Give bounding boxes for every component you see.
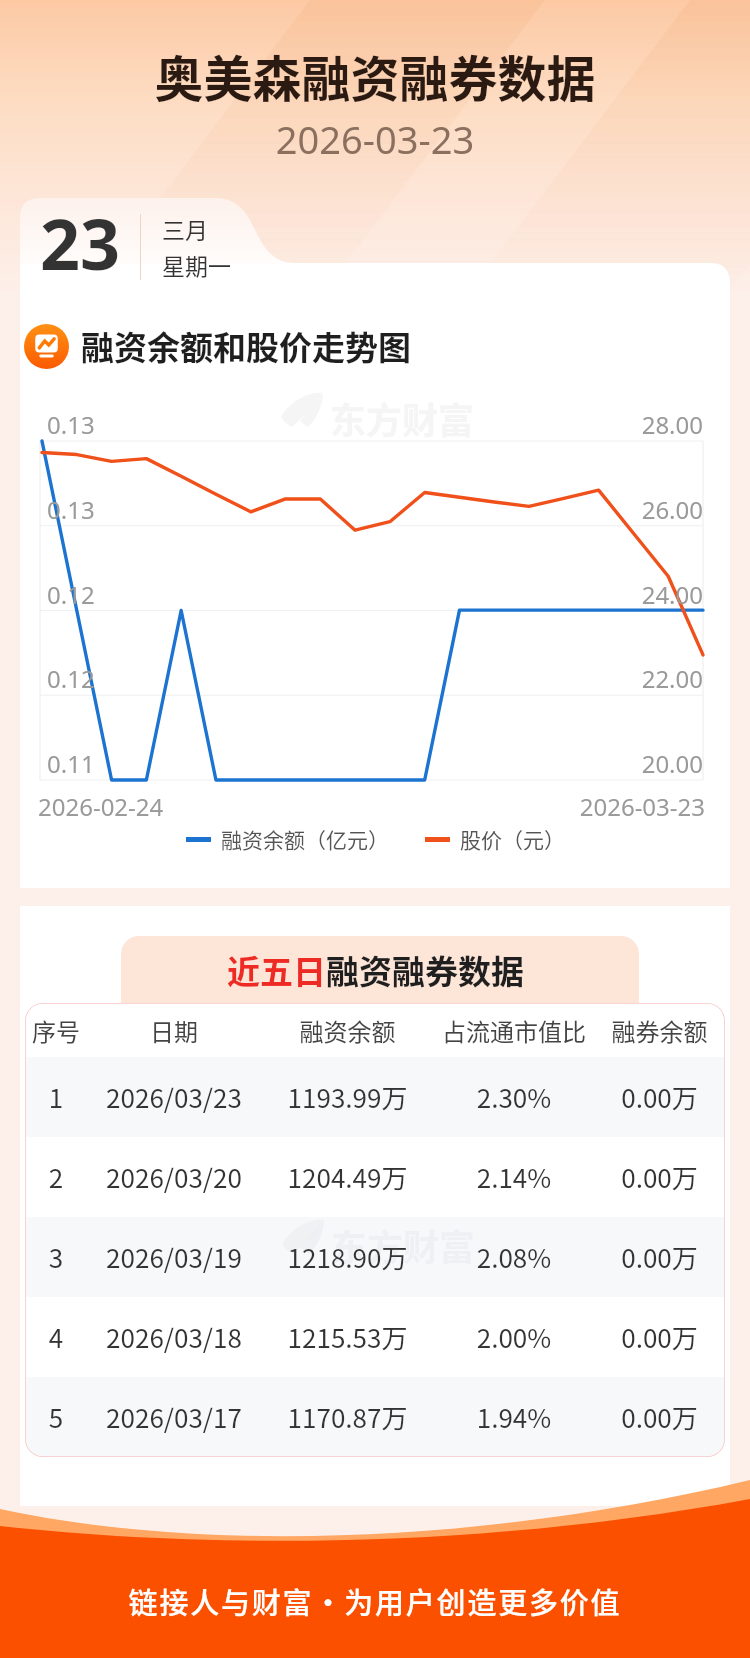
button[interactable]: 4 (25, 1297, 725, 1377)
staticText: 占流通市值比 (434, 1013, 594, 1048)
staticText: 0.00万 (594, 1158, 725, 1196)
staticText: 0.00万 (594, 1398, 725, 1436)
staticText: 5 (25, 1398, 87, 1436)
staticText: 26.00 (593, 493, 703, 526)
staticText: 2.00% (434, 1318, 594, 1356)
staticText: 融资融券数据 (326, 946, 524, 994)
staticText: 1.94% (434, 1398, 594, 1436)
staticText: 0.00万 (594, 1078, 725, 1116)
staticText: 2.14% (434, 1158, 594, 1196)
staticText: 1 (25, 1078, 87, 1116)
staticText: 2026/03/17 (87, 1398, 261, 1436)
staticText: 奥美森融资融券数据 (0, 40, 750, 111)
staticText: 1204.49万 (261, 1158, 434, 1196)
staticText: 三月 (162, 212, 208, 245)
staticText: 2026-02-24 (38, 790, 164, 823)
staticText: 2026/03/23 (87, 1078, 261, 1116)
staticText: 融券余额 (594, 1013, 725, 1048)
staticText: 1170.87万 (261, 1398, 434, 1436)
staticText: 1193.99万 (261, 1078, 434, 1116)
staticText: 2.08% (434, 1238, 594, 1276)
staticText: 1218.90万 (261, 1238, 434, 1276)
staticText: 2026-03-23 (0, 113, 750, 165)
staticText: 0.13 (47, 493, 95, 526)
staticText: 23 (40, 195, 121, 281)
staticText: 2 (25, 1158, 87, 1196)
staticText: 0.12 (47, 662, 95, 695)
staticText: 融资余额 (261, 1013, 434, 1048)
staticText: 22.00 (593, 662, 703, 695)
staticText: 股价（元） (460, 824, 565, 854)
staticText: 融资余额（亿元） (221, 824, 389, 854)
staticText: 4 (25, 1318, 87, 1356)
staticText: 星期一 (162, 248, 231, 281)
button[interactable]: 3 (25, 1217, 725, 1297)
staticText: 28.00 (593, 408, 703, 441)
staticText: 序号 (25, 1013, 87, 1048)
staticText: 20.00 (593, 747, 703, 780)
button[interactable]: 2 (25, 1137, 725, 1217)
staticText: 24.00 (593, 578, 703, 611)
staticText: 0.00万 (594, 1238, 725, 1276)
button[interactable]: 1 (25, 1057, 725, 1137)
staticText: 东方财富 (330, 392, 475, 444)
staticText: 日期 (87, 1013, 261, 1048)
staticText: 1215.53万 (261, 1318, 434, 1356)
staticText: 0.11 (47, 747, 95, 780)
staticText: 2.30% (434, 1078, 594, 1116)
staticText: 0.00万 (594, 1318, 725, 1356)
staticText: 0.12 (47, 578, 95, 611)
staticText: 近五日 (227, 946, 326, 994)
staticText: 3 (25, 1238, 87, 1276)
other: 融资余额和股价走势图 (24, 324, 69, 369)
staticText: 2026/03/20 (87, 1158, 261, 1196)
staticText: 2026-03-23 (533, 790, 705, 823)
button[interactable]: 5 (25, 1377, 725, 1457)
staticText: 0.13 (47, 408, 95, 441)
staticText: 东方财富 (331, 1219, 476, 1271)
staticText: 融资余额和股价走势图 (81, 322, 411, 370)
staticText: 链接人与财富·为用户创造更多价值 (0, 1580, 750, 1622)
staticText: 2026/03/19 (87, 1238, 261, 1276)
staticText: 2026/03/18 (87, 1318, 261, 1356)
